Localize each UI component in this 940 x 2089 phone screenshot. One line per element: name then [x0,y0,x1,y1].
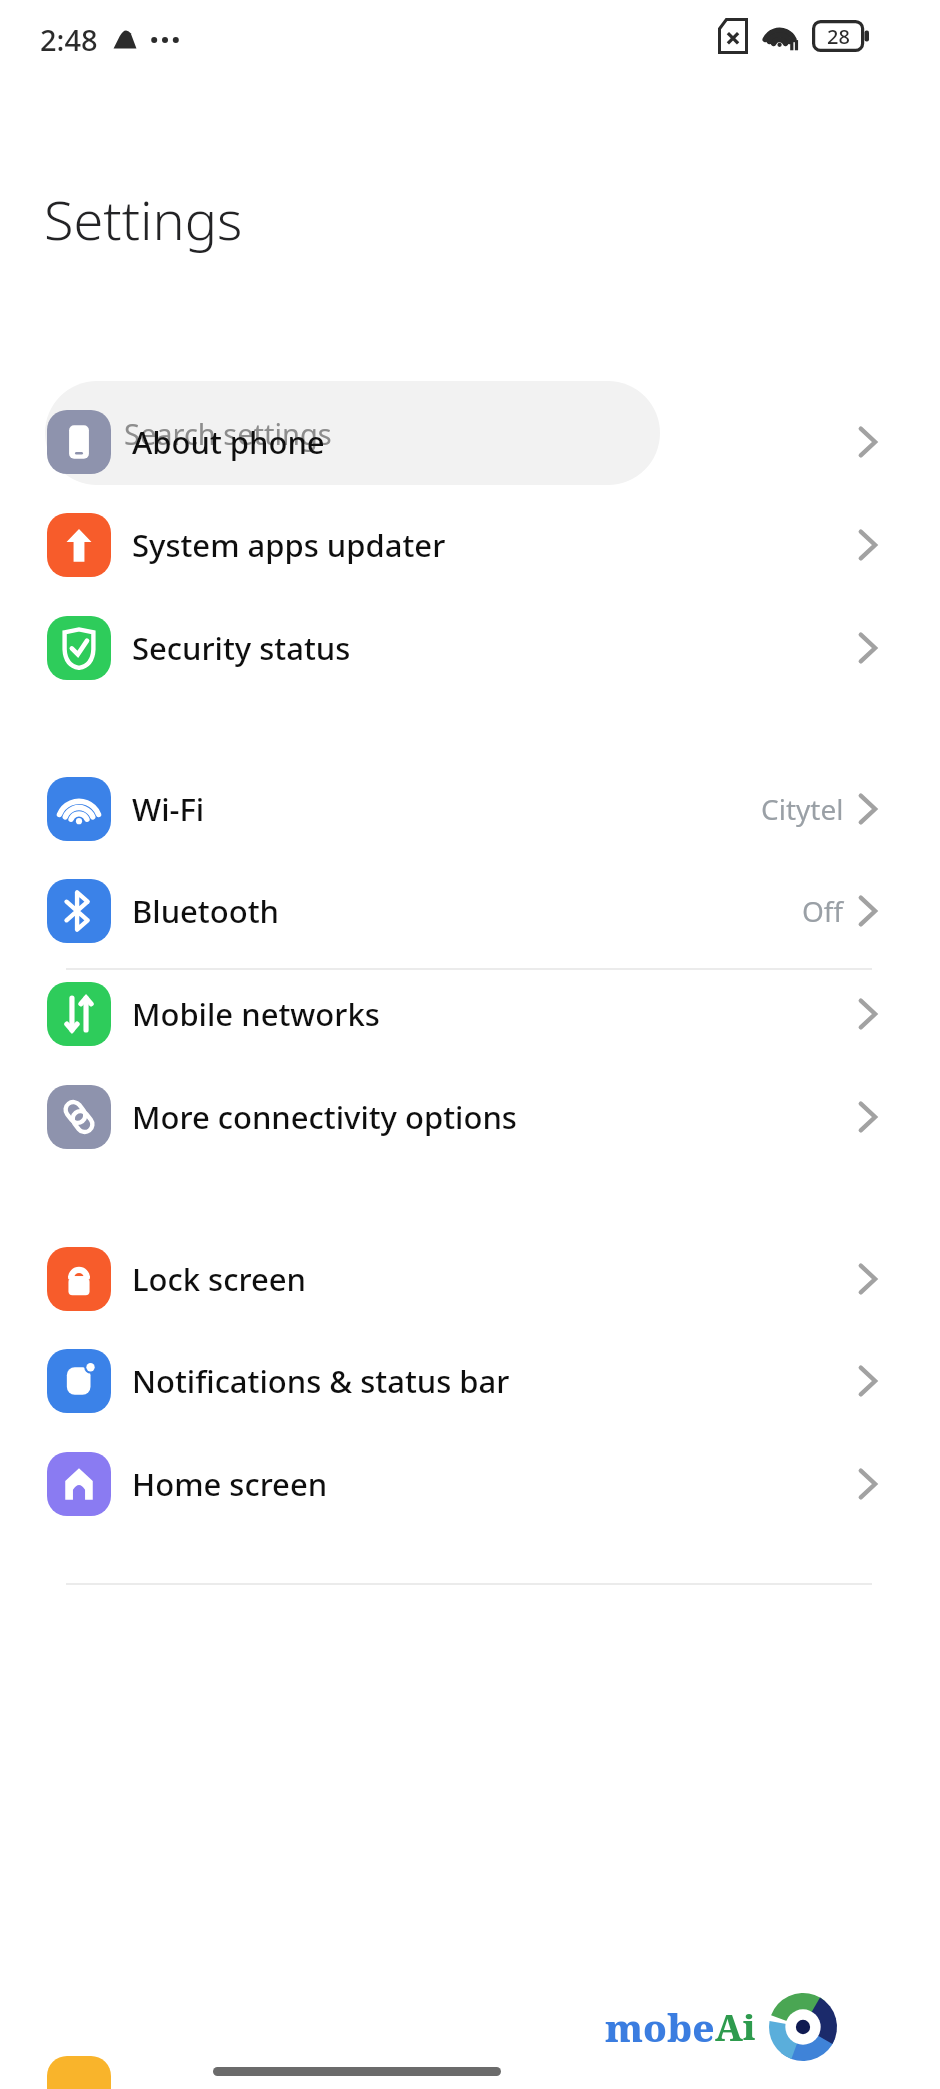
button[interactable]: Notifications & status bar [0,1330,940,1432]
button[interactable]: Mobile networks [0,963,940,1065]
button[interactable]: Search settings [45,381,660,485]
staticText: Search settings [124,414,332,453]
button[interactable]: System apps updater [0,494,940,596]
staticText: Lock screen [132,1258,306,1300]
button[interactable]: More connectivity options [0,1066,940,1168]
staticText: Citytel [761,790,844,828]
staticText: A [715,2003,743,2052]
staticText: Wi-Fi [132,788,205,830]
staticText: 2:48 [40,20,98,59]
button[interactable]: Security status [0,597,940,699]
staticText: i [743,2004,756,2050]
staticText: Notifications & status bar [132,1360,510,1402]
staticText: About phone [132,421,325,463]
staticText: mobe [605,2001,715,2053]
staticText: 28 [827,23,850,50]
button[interactable]: Bluetooth [0,860,940,962]
button[interactable]: Home screen [0,1433,940,1535]
staticText: More connectivity options [132,1096,517,1138]
button[interactable]: About phone [0,391,940,493]
staticText: Home screen [132,1463,328,1505]
button[interactable]: Lock screen [0,1228,940,1330]
staticText: System apps updater [132,524,446,566]
staticText: Bluetooth [132,890,279,932]
staticText: Mobile networks [132,993,380,1035]
staticText: Off [802,892,844,930]
button[interactable]: Wi-Fi [0,758,940,860]
staticText: Settings [44,182,243,256]
staticText: Security status [132,627,351,669]
